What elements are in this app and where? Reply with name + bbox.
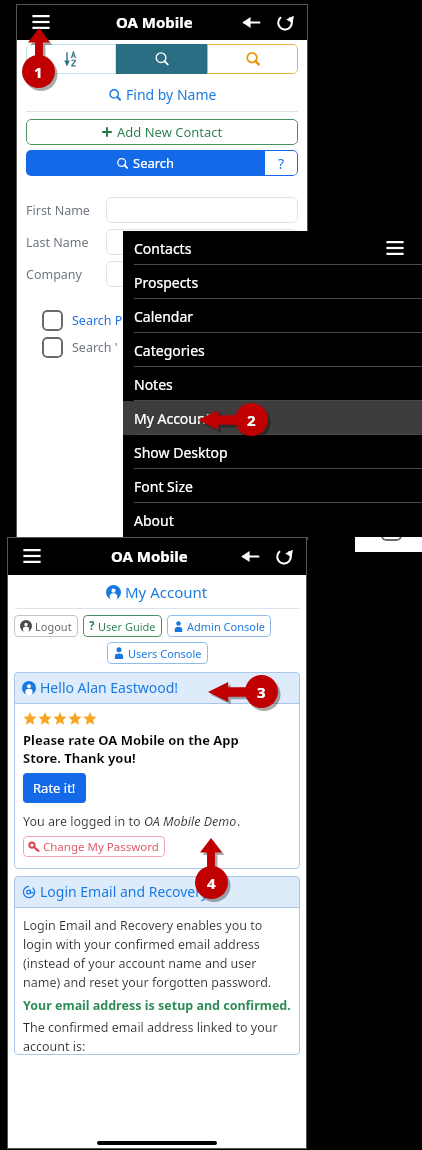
button[interactable]: Sort: [26, 44, 116, 74]
staticText: User Guide: [98, 619, 156, 634]
button[interactable]: Categories: [123, 333, 422, 367]
button[interactable]: Reload: [267, 539, 301, 573]
staticText: OA Mobile Demo: [144, 813, 237, 830]
staticText: 4: [207, 873, 216, 893]
staticText: 3: [257, 682, 266, 702]
staticText: My Account: [134, 409, 211, 428]
staticText: ?: [278, 154, 285, 173]
button[interactable]: Search P: [42, 310, 308, 331]
button[interactable]: Back: [234, 5, 268, 39]
button[interactable]: Back: [233, 539, 267, 573]
staticText: Add New Contact: [117, 123, 223, 141]
staticText: About: [134, 511, 174, 530]
staticText: Prospects: [134, 273, 199, 292]
staticText: Categories: [134, 341, 205, 360]
staticText: Show Desktop: [134, 443, 228, 462]
staticText: Please rate OA Mobile on the App Store. …: [23, 731, 239, 767]
staticText: 2: [247, 410, 256, 430]
button[interactable]: Prospects: [123, 265, 422, 299]
button[interactable]: Add New Contact: [26, 119, 298, 145]
staticText: First Na: [363, 422, 409, 439]
button[interactable]: Font Size: [123, 469, 422, 503]
button[interactable]: Admin Console: [167, 615, 271, 637]
staticText: Search ': [72, 339, 118, 356]
staticText: Compa: [363, 486, 405, 503]
button[interactable]: Notes: [123, 367, 422, 401]
button[interactable]: Advanced search: [207, 44, 298, 74]
staticText: Rate it!: [33, 779, 76, 797]
staticText: Login Email and Recovery enables you to …: [23, 917, 291, 991]
button[interactable]: My Account: [7, 582, 307, 602]
button[interactable]: Menu: [15, 539, 49, 573]
staticText: Contacts: [134, 239, 192, 258]
button[interactable]: [106, 261, 298, 287]
staticText: Font Size: [134, 477, 193, 496]
staticText: OA Mobile: [111, 546, 188, 566]
staticText: Last Name: [26, 234, 106, 251]
staticText: Find by Name: [126, 85, 217, 104]
button[interactable]: [106, 197, 298, 223]
staticText: Last Na: [363, 454, 407, 471]
button[interactable]: [106, 229, 298, 255]
staticText: Logout: [35, 619, 72, 634]
staticText: Company: [26, 266, 106, 283]
button[interactable]: Calendar: [123, 299, 422, 333]
button[interactable]: Menu: [24, 5, 58, 39]
button[interactable]: Change My Password: [23, 836, 165, 857]
button[interactable]: Users Console: [107, 642, 208, 664]
button[interactable]: Search: [116, 44, 207, 74]
button[interactable]: Search: [26, 150, 264, 176]
staticText: ?: [89, 618, 95, 634]
button[interactable]: About: [123, 503, 422, 537]
button[interactable]: Contacts: [123, 231, 422, 265]
staticText: .: [237, 813, 241, 830]
staticText: Login Email and Recovery: [40, 882, 209, 901]
button[interactable]: Show Desktop: [123, 435, 422, 469]
button[interactable]: Rate it!: [23, 773, 86, 803]
staticText: Your email address is setup and confirme…: [23, 997, 291, 1014]
staticText: OA Mobile: [116, 12, 193, 32]
staticText: My Account: [125, 582, 208, 602]
button[interactable]: Find by Name: [16, 85, 308, 104]
staticText: Notes: [134, 375, 173, 394]
button[interactable]: Logout: [14, 615, 78, 637]
staticText: Search P: [72, 312, 123, 329]
staticText: First Name: [26, 202, 106, 219]
staticText: Hello Alan Eastwood!: [40, 678, 179, 697]
button[interactable]: Hello Alan Eastwood!: [22, 678, 292, 697]
button[interactable]: ?: [83, 615, 162, 637]
staticText: 1: [34, 62, 43, 82]
button[interactable]: My Account: [123, 401, 422, 435]
button[interactable]: Login Email and Recovery: [22, 882, 292, 901]
staticText: The confirmed email address linked to yo…: [23, 1019, 291, 1055]
staticText: Search: [133, 154, 175, 172]
staticText: Admin Console: [187, 619, 265, 634]
button[interactable]: Reload: [268, 5, 302, 39]
staticText: Change My Password: [43, 839, 159, 855]
staticText: You are logged in to: [23, 813, 144, 830]
button[interactable]: Close menu: [380, 233, 410, 263]
staticText: Users Console: [128, 646, 202, 661]
button[interactable]: Search ': [42, 337, 308, 358]
staticText: Calendar: [134, 307, 194, 326]
button[interactable]: Help: [264, 150, 298, 176]
